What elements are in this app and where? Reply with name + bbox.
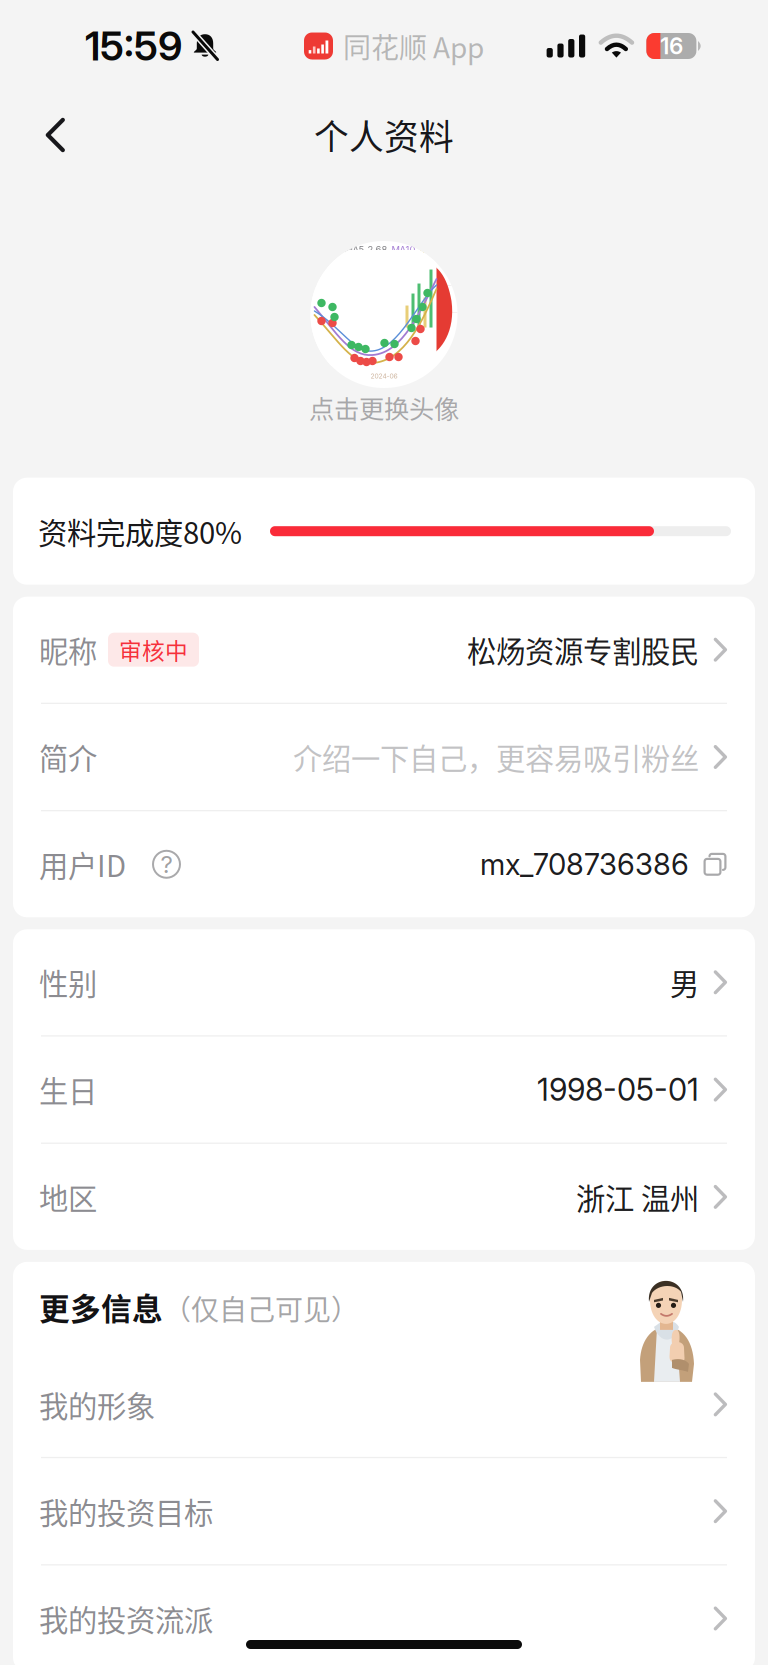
staticText: 用户ID [39, 843, 126, 885]
button[interactable]: 点击更换头像 [309, 241, 459, 426]
staticText: （仅自己可见） [163, 1288, 359, 1328]
staticText: 我的投资流派 [39, 1597, 213, 1640]
button[interactable]: 昵称 [13, 597, 755, 703]
staticText: 生日 [39, 1068, 97, 1111]
staticText: 审核中 [119, 633, 188, 666]
staticText: 简介 [39, 736, 97, 778]
staticText: 昵称 [39, 628, 97, 671]
staticText: 2024-06 [370, 372, 397, 380]
staticText: 个人资料 [314, 110, 454, 160]
button[interactable]: 性别 [13, 929, 755, 1035]
button[interactable]: 地区 [13, 1144, 755, 1250]
button[interactable]: 简介 [13, 704, 755, 810]
staticText: 我的投资目标 [39, 1490, 213, 1532]
button[interactable]: 我的投资目标 [13, 1458, 755, 1564]
button[interactable]: 生日 [13, 1037, 755, 1143]
button[interactable]: 用户ID [13, 811, 755, 917]
staticText: 浙江 温州 [576, 1176, 699, 1218]
staticText: 松炀资源专割股民 [467, 628, 699, 671]
staticText: 同花顺 App [343, 26, 484, 66]
staticText: 介绍一下自己，更容易吸引粉丝 [293, 736, 699, 778]
staticText: MA5 2.68 [344, 244, 387, 255]
staticText: MA20 [419, 244, 445, 255]
staticText: 男 [670, 961, 699, 1003]
staticText: mx_708736386 [480, 846, 689, 882]
staticText: 我的形象 [39, 1383, 155, 1426]
staticText: 点击更换头像 [309, 389, 459, 426]
button[interactable]: 我的投资流派 [13, 1565, 755, 1665]
staticText: 性别 [39, 961, 97, 1003]
staticText: 更多信息 [39, 1285, 163, 1329]
button[interactable]: 我的形象 [13, 1352, 755, 1457]
staticText: 16 [660, 32, 683, 60]
button[interactable]: 返回 [21, 97, 90, 172]
staticText: 资料完成度80% [38, 510, 242, 552]
staticText: 地区 [39, 1176, 97, 1218]
staticText: 1998-05-01 [537, 1071, 699, 1108]
staticText: ? [160, 850, 172, 879]
staticText: MA10 [391, 244, 415, 255]
staticText: 15:59 [85, 22, 182, 70]
